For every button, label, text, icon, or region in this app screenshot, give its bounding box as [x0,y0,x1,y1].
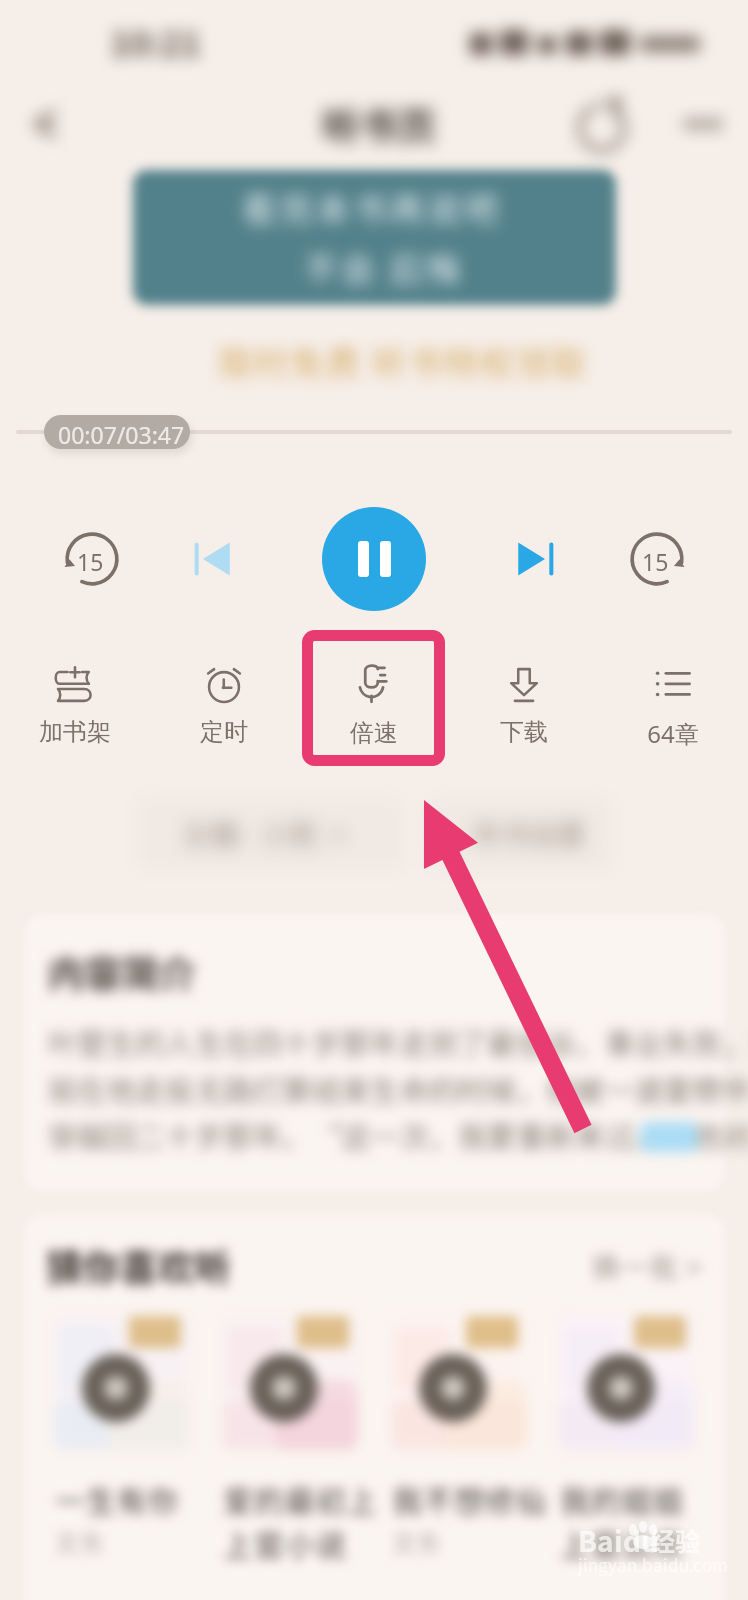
staticText: 加书架 [39,717,111,747]
button[interactable]: Forward 15 seconds [622,524,692,594]
button[interactable]: 64章 [618,648,728,756]
staticText: 下载 [500,717,548,747]
staticText: 定时 [200,717,248,747]
staticText: 64章 [647,717,699,750]
button[interactable]: Previous chapter [176,524,246,594]
button[interactable]: Pause [322,507,426,611]
staticText: 00:07/03:47 [58,419,185,450]
button[interactable]: 加书架 [20,648,130,756]
staticText: 倍速 [350,718,398,748]
button[interactable]: Playback speed [302,630,445,766]
staticText: 15 [642,546,669,577]
button[interactable]: 下载 [469,648,579,756]
button[interactable]: Rewind 15 seconds [57,524,127,594]
staticText: 15 [77,546,104,577]
button[interactable]: Next chapter [502,524,572,594]
button[interactable]: 定时 [169,648,279,756]
